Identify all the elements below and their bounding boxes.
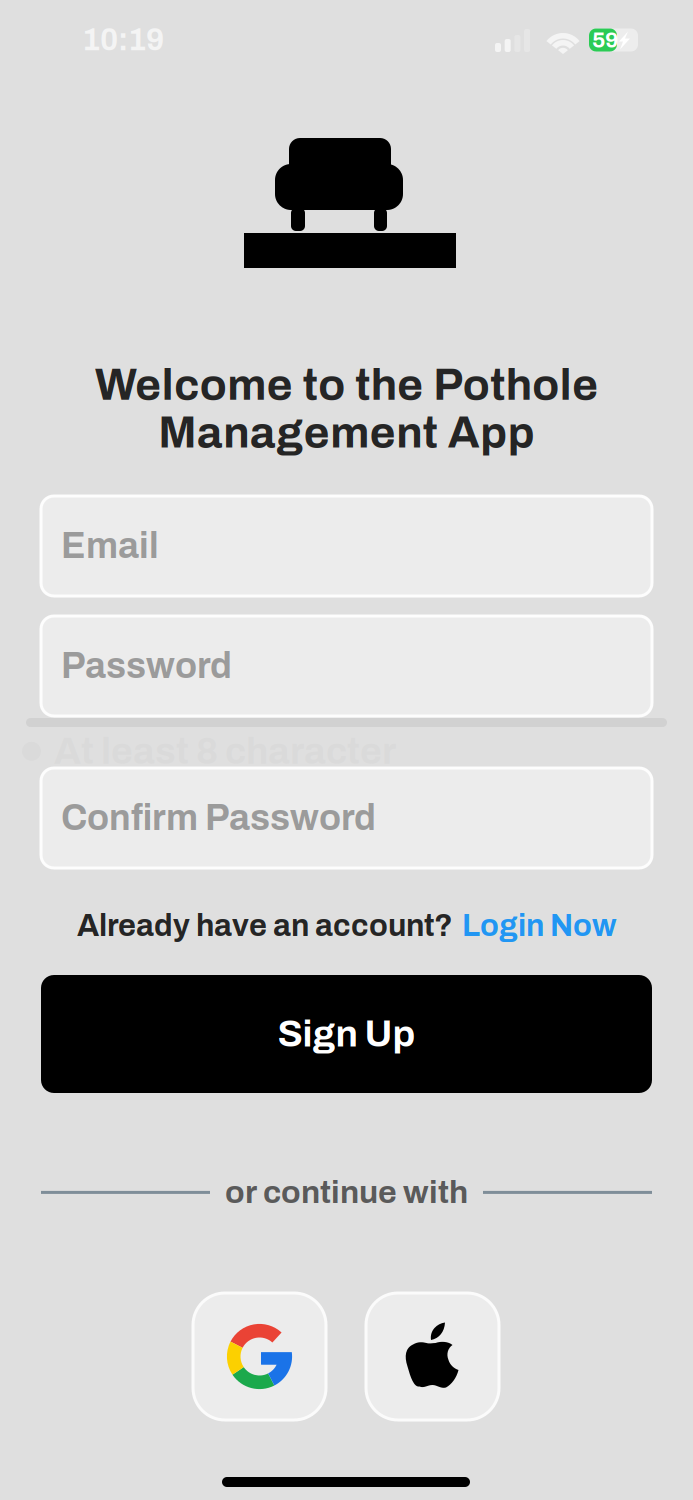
- staticText: Welcome to the Pothole: [95, 361, 598, 409]
- button[interactable]: Continue with Google: [193, 1293, 326, 1420]
- button[interactable]: Sign Up: [41, 975, 652, 1093]
- staticText: Confirm Password: [61, 798, 376, 838]
- staticText: Management App: [158, 409, 535, 457]
- staticText: 10:19: [82, 23, 164, 57]
- staticText: At least 8 character: [54, 731, 396, 772]
- button[interactable]: Login Now: [462, 909, 616, 942]
- staticText: Password: [61, 646, 232, 686]
- button[interactable]: Continue with Apple: [366, 1293, 499, 1420]
- staticText: Login Now: [462, 909, 616, 942]
- staticText: Email: [61, 526, 159, 566]
- staticText: or continue with: [225, 1175, 468, 1210]
- staticText: Already have an account?: [77, 909, 453, 942]
- staticText: 59: [592, 28, 618, 52]
- staticText: Sign Up: [277, 1014, 415, 1054]
